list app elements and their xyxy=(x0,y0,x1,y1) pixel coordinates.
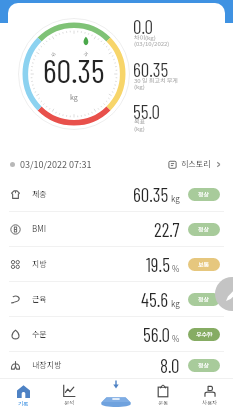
button[interactable]: 측정 xyxy=(92,378,139,409)
staticText: BMI xyxy=(32,223,47,235)
button[interactable]: 지방 xyxy=(0,247,233,281)
button[interactable]: 사용자 xyxy=(186,378,233,409)
staticText: 19.5 xyxy=(146,253,170,276)
button[interactable]: 내장지방 xyxy=(0,352,233,378)
staticText: 45.6 xyxy=(141,288,169,311)
button[interactable]: Edit measurement xyxy=(215,277,233,311)
staticText: 55.0 xyxy=(133,100,160,123)
button[interactable]: 체중 xyxy=(0,177,233,211)
button[interactable]: 분석 xyxy=(46,378,92,409)
staticText: 8.0 xyxy=(160,354,180,377)
staticText: 정상 xyxy=(198,361,210,370)
staticText: kg xyxy=(171,298,180,310)
staticText: % xyxy=(172,263,180,275)
staticText: kg xyxy=(70,92,78,102)
staticText: 차이(kg) xyxy=(134,33,156,42)
staticText: 0.0 xyxy=(133,15,153,38)
staticText: 60.35 xyxy=(133,58,169,81)
staticText: 75 xyxy=(82,50,90,58)
staticText: 03/10/2022 07:31 xyxy=(20,158,92,171)
staticText: 히스토리 xyxy=(181,158,211,170)
button[interactable]: BMI xyxy=(0,212,233,246)
button[interactable]: 히스토리 xyxy=(168,158,222,170)
staticText: 56.0 xyxy=(143,323,170,346)
staticText: 기록 xyxy=(18,400,29,408)
staticText: 정상 xyxy=(198,295,210,304)
staticText: 60.35 xyxy=(133,183,169,206)
staticText: (kg) xyxy=(134,82,145,91)
staticText: 정상 xyxy=(198,190,210,199)
staticText: 체중 xyxy=(32,188,47,200)
staticText: 22.7 xyxy=(154,218,180,241)
staticText: % xyxy=(172,333,180,345)
staticText: 분석 xyxy=(64,399,75,407)
staticText: 근육 xyxy=(32,293,47,305)
staticText: 내장지방 xyxy=(32,359,62,371)
staticText: kg xyxy=(171,193,180,205)
staticText: 보통 xyxy=(198,260,210,269)
staticText: (kg) xyxy=(134,124,145,133)
button[interactable]: 운동 xyxy=(139,378,186,409)
staticText: 지방 xyxy=(32,258,47,270)
staticText: 45 xyxy=(50,50,57,58)
staticText: 목표 xyxy=(134,117,146,126)
staticText: 사용자 xyxy=(202,399,218,407)
staticText: 운동 xyxy=(158,399,169,407)
staticText: 정상 xyxy=(198,225,210,234)
button[interactable]: 수분 xyxy=(0,317,233,351)
button[interactable]: 근육 xyxy=(0,282,233,316)
staticText: 우수한 xyxy=(196,330,213,339)
staticText: 60.35 xyxy=(43,50,105,90)
staticText: 30 일 최고치 무게 xyxy=(134,76,178,85)
button[interactable]: 기록 xyxy=(0,378,46,409)
staticText: 수분 xyxy=(32,328,47,340)
staticText: (03/10/2022) xyxy=(134,39,170,48)
